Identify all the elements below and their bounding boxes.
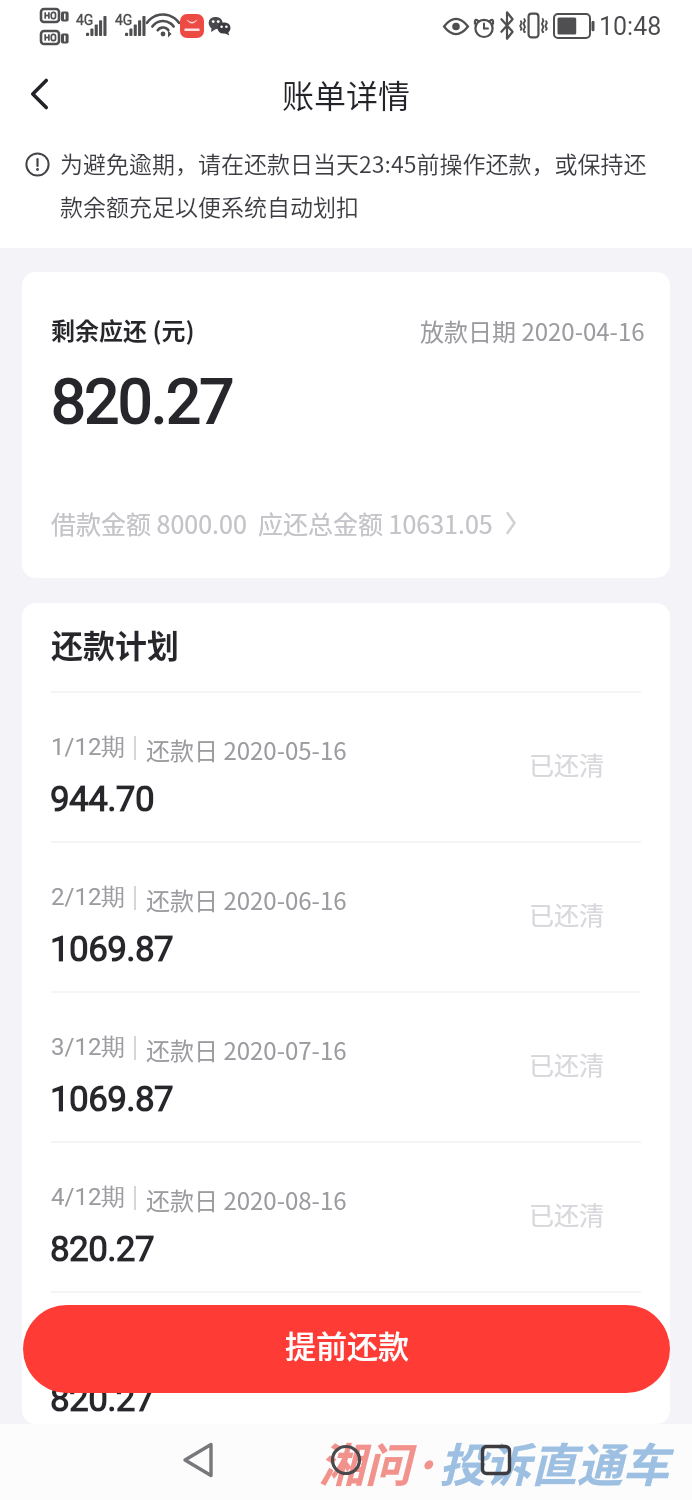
staticText: 还款日 2020-06-16	[146, 882, 347, 917]
staticText: 还款计划	[51, 621, 180, 667]
button[interactable]: 2/12期	[22, 841, 670, 991]
staticText: 提前还款	[285, 1322, 409, 1367]
staticText: 820.27	[50, 1379, 154, 1420]
button[interactable]: 提前还款	[23, 1305, 670, 1393]
staticText: 1069.87	[50, 1079, 174, 1120]
staticText: 放款日期 2020-04-16	[420, 313, 645, 348]
button[interactable]: 剩余应还 (元)	[22, 272, 670, 578]
staticText: 还款日 2020-08-16	[146, 1182, 347, 1217]
staticText: 已还清	[529, 1046, 605, 1082]
staticText: 944.70	[50, 779, 154, 820]
staticText: 4/12期	[51, 1182, 126, 1212]
staticText: 已还清	[529, 896, 605, 932]
button[interactable]: Home	[306, 1422, 386, 1498]
staticText: 1/12期	[51, 732, 126, 762]
staticText: 820.27	[51, 365, 233, 438]
staticText: 1069.87	[50, 929, 174, 970]
staticText: 820.27	[50, 1229, 154, 1270]
staticText: 为避免逾期，请在还款日当天23:45前操作还款，或保持还款余额充足以便系统自动划…	[60, 146, 653, 223]
button[interactable]: Recents	[456, 1422, 536, 1498]
staticText: 湘问·	[319, 1429, 439, 1496]
button[interactable]: Back	[0, 56, 76, 132]
staticText: 3/12期	[51, 1032, 126, 1062]
button[interactable]: 1/12期	[22, 691, 670, 841]
staticText: 已还清	[529, 1196, 605, 1232]
button[interactable]: 3/12期	[22, 991, 670, 1141]
staticText: 账单详情	[0, 71, 692, 117]
staticText: 4G	[76, 12, 94, 28]
staticText: 还款日 2020-05-16	[146, 732, 347, 767]
staticText: 还款日 2020-09-16	[146, 1332, 347, 1367]
button[interactable]: 4/12期	[22, 1141, 670, 1291]
staticText: 已还清	[529, 746, 605, 782]
staticText: 投诉直通车	[439, 1429, 669, 1496]
button[interactable]: Back	[158, 1422, 238, 1498]
staticText: 借款金额 8000.00 应还总金额 10631.05	[51, 505, 493, 541]
staticText: 10:48	[599, 12, 662, 41]
staticText: 剩余应还 (元)	[51, 312, 195, 347]
staticText: 还款日 2020-07-16	[146, 1032, 347, 1067]
staticText: 4G	[115, 12, 133, 28]
staticText: 2/12期	[51, 882, 126, 912]
button[interactable]: 5/12期	[22, 1291, 670, 1424]
